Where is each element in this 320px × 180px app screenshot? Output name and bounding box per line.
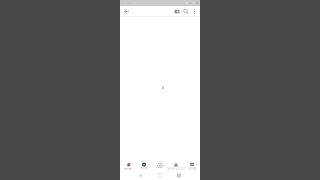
button[interactable]: Create bbox=[152, 160, 168, 171]
button[interactable]: More options bbox=[190, 6, 198, 17]
staticText: Library bbox=[188, 167, 196, 170]
button[interactable]: Library bbox=[184, 160, 200, 171]
button[interactable]: Back bbox=[121, 6, 133, 17]
button[interactable]: Shorts bbox=[136, 160, 152, 171]
button[interactable]: Home bbox=[150, 171, 169, 180]
button[interactable]: Home bbox=[120, 160, 136, 171]
staticText: Shorts bbox=[140, 167, 148, 170]
button[interactable]: Recent apps bbox=[169, 171, 188, 180]
staticText: Home bbox=[124, 167, 132, 170]
button[interactable]: Create video bbox=[172, 6, 181, 17]
staticText: Subscriptions bbox=[167, 167, 185, 170]
button[interactable]: Subscriptions bbox=[168, 160, 184, 171]
button[interactable]: Search bbox=[181, 6, 190, 17]
button[interactable]: Back bbox=[131, 171, 150, 180]
